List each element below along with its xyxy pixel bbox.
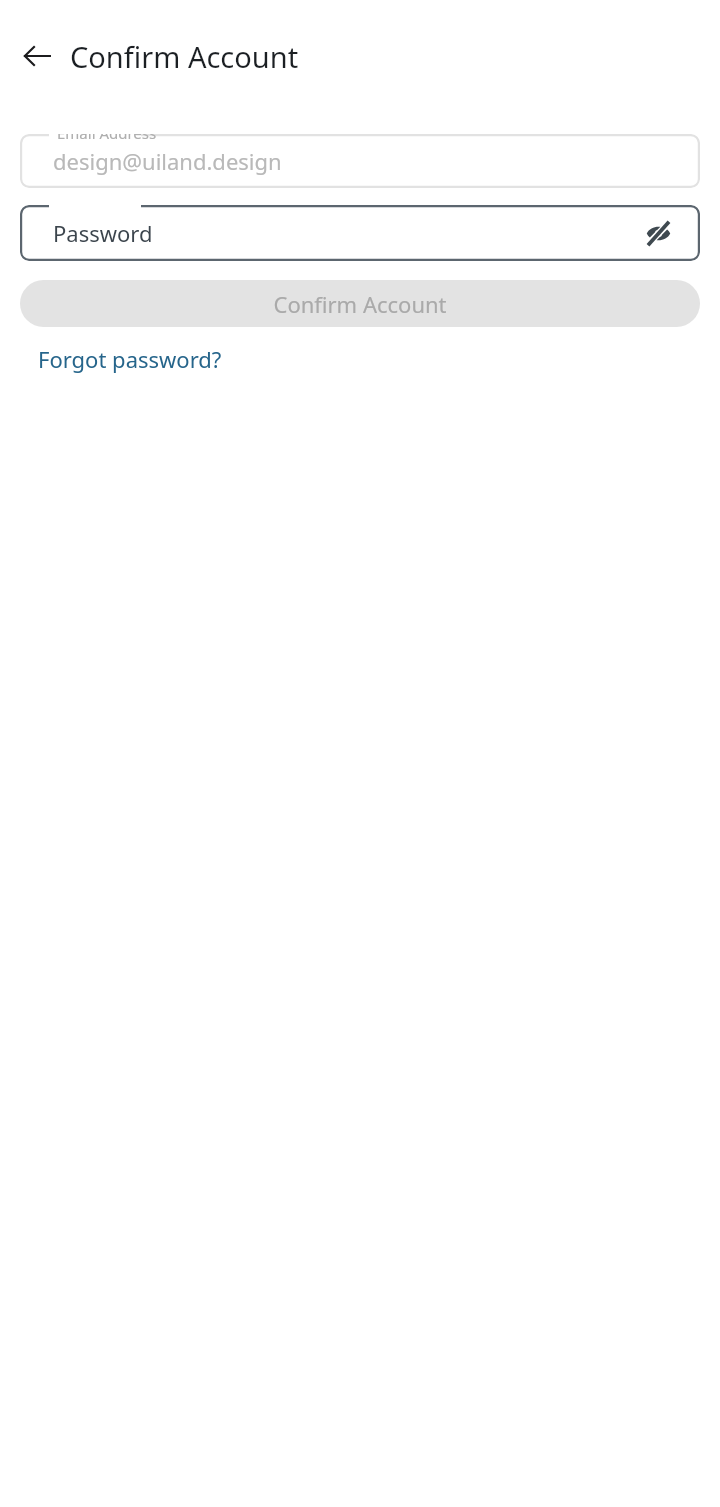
button[interactable]: Show password xyxy=(636,211,680,255)
button[interactable]: Email Address xyxy=(20,134,700,188)
button[interactable]: Password xyxy=(20,205,700,261)
staticText: Confirm Account xyxy=(273,289,447,319)
staticText: Password xyxy=(53,218,636,248)
staticText: Email Address xyxy=(57,134,157,143)
button[interactable]: Back xyxy=(13,32,61,80)
staticText: Forgot password? xyxy=(38,344,222,374)
staticText: design@uiland.design xyxy=(53,146,680,176)
button[interactable]: Forgot password? xyxy=(30,336,230,382)
button[interactable]: Confirm Account xyxy=(20,280,700,327)
staticText: Confirm Account xyxy=(70,37,299,76)
